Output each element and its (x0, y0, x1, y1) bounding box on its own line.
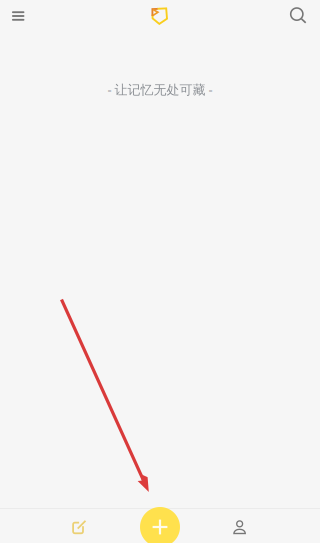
button[interactable]: Add (140, 507, 180, 543)
button[interactable]: Search (281, 0, 317, 32)
staticText: - 让记忆无处可藏 - (107, 81, 212, 98)
button[interactable]: Profile (160, 509, 320, 543)
button[interactable]: Menu (0, 0, 36, 32)
button[interactable]: Compose (0, 509, 160, 543)
